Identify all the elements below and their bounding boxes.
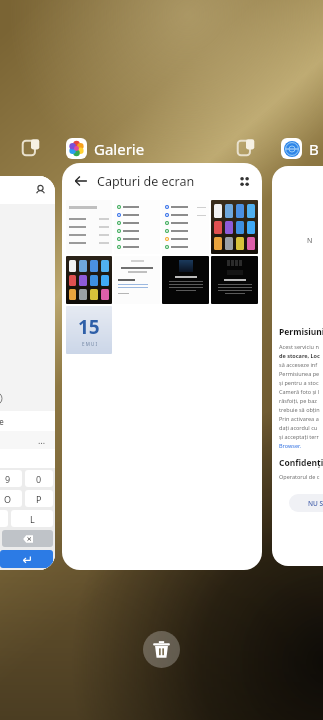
staticText: trebuie să obțin — [279, 406, 320, 413]
staticText: de stocare, Loc — [279, 352, 320, 359]
staticText: P — [36, 493, 42, 505]
button[interactable]: B — [281, 138, 319, 159]
staticText: Acest serviciu n — [279, 343, 319, 350]
button[interactable]: Split screen — [233, 135, 259, 161]
staticText: și acceptați terr — [279, 433, 319, 440]
staticText: Galerie — [94, 139, 145, 159]
staticText: și pentru a stoc — [279, 379, 319, 386]
staticText: … — [38, 434, 46, 446]
staticText: Operatorul de c — [279, 473, 320, 480]
staticText: dați acordul cu — [279, 424, 318, 431]
staticText: O — [4, 493, 12, 505]
button[interactable]: 0 — [25, 470, 53, 487]
button[interactable]: O — [0, 490, 22, 507]
staticText: NU SUNT — [308, 499, 323, 508]
button[interactable]: Galerie — [66, 138, 145, 159]
staticText: Browser. — [279, 442, 301, 449]
staticText: 9 — [5, 473, 11, 485]
staticText: Confidenția — [279, 457, 323, 469]
staticText: 0 — [36, 473, 42, 485]
staticText: răsfoiți, pe baz — [279, 397, 317, 404]
staticText: Schimbare — [0, 416, 4, 427]
staticText: 15 — [78, 314, 100, 340]
staticText: E M U I — [82, 341, 97, 347]
button[interactable]: P — [25, 490, 53, 507]
staticText: L — [30, 513, 35, 525]
button[interactable]: 9 — [0, 470, 22, 487]
staticText: B — [309, 139, 319, 159]
staticText: Prin activarea a — [279, 415, 319, 422]
staticText: N — [307, 236, 313, 246]
button[interactable]: L — [11, 510, 53, 527]
staticText: Permisiunea pe — [279, 370, 320, 377]
button[interactable]: N — [272, 166, 323, 566]
button[interactable]: NU SUNT — [289, 494, 323, 512]
staticText: Permisiuni ș — [279, 326, 323, 338]
staticText: Cameră foto și l — [279, 388, 320, 395]
button[interactable]: Close all — [143, 631, 180, 668]
staticText: să acceseze inf — [279, 361, 318, 368]
staticText: Capturi de ecran — [97, 173, 195, 190]
button[interactable]: Split screen — [18, 135, 44, 161]
button[interactable]: Capturi de ecran — [62, 163, 262, 570]
button[interactable]: Schimbare — [0, 176, 55, 570]
button[interactable] — [2, 530, 53, 547]
button[interactable] — [0, 550, 53, 568]
